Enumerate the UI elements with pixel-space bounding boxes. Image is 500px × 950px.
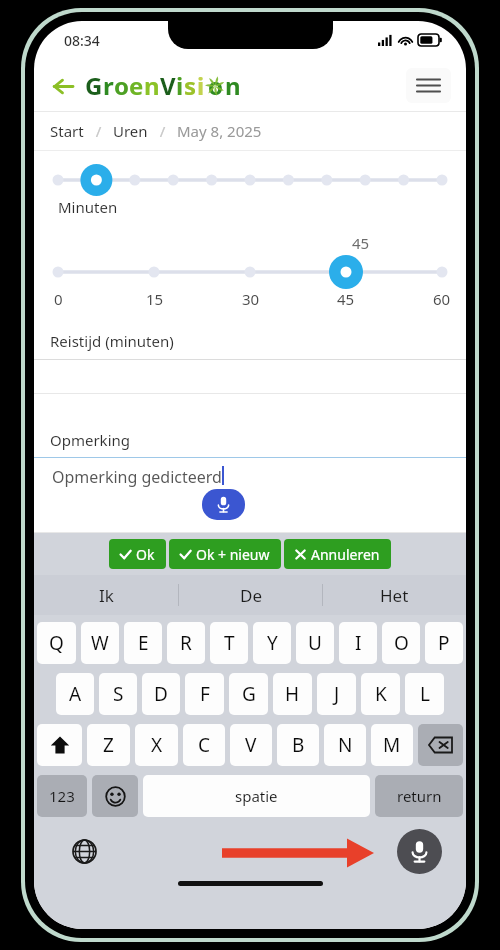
staticText: B — [292, 732, 305, 758]
staticText: o — [208, 69, 223, 102]
staticText: Opmerking gedicteerd — [52, 466, 222, 488]
staticText: / — [84, 121, 113, 141]
button[interactable]: Start — [50, 121, 84, 141]
button[interactable]: A — [56, 673, 94, 715]
button[interactable]: W — [81, 622, 119, 664]
staticText: Z — [103, 732, 114, 758]
staticText: 15 — [146, 289, 164, 305]
button[interactable]: B — [277, 724, 319, 766]
button[interactable]: I — [339, 622, 377, 664]
staticText: G — [242, 681, 256, 707]
staticText: P — [438, 630, 450, 656]
staticText: G — [85, 69, 103, 102]
staticText: s — [184, 69, 197, 102]
staticText: 08:34 — [64, 31, 100, 50]
staticText: / — [148, 121, 177, 141]
staticText: i — [197, 69, 205, 102]
button[interactable]: U — [296, 622, 334, 664]
staticText: R — [180, 630, 192, 656]
button[interactable]: Y — [253, 622, 291, 664]
staticText: V — [160, 69, 176, 102]
button[interactable]: Ik — [34, 575, 178, 615]
button[interactable]: S — [99, 673, 137, 715]
staticText: spatie — [235, 786, 278, 806]
staticText: Y — [267, 630, 278, 656]
staticText: i — [176, 69, 184, 102]
button[interactable]: Emoji — [92, 775, 138, 817]
staticText: E — [138, 630, 149, 656]
button[interactable]: Dictate note — [202, 489, 245, 520]
staticText: Q — [49, 630, 64, 656]
staticText: W — [91, 630, 109, 656]
staticText: r — [103, 69, 114, 102]
staticText: T — [224, 630, 235, 656]
button[interactable]: V — [230, 724, 272, 766]
staticText: H — [285, 681, 300, 707]
staticText: o — [114, 69, 129, 102]
button[interactable]: 123 — [37, 775, 87, 817]
button[interactable]: X — [135, 724, 178, 766]
staticText: N — [338, 732, 353, 758]
button[interactable]: Shift — [37, 724, 82, 766]
staticText: F — [200, 681, 210, 707]
staticText: X — [151, 732, 163, 758]
button[interactable]: M — [371, 724, 413, 766]
staticText: 0 — [54, 289, 63, 305]
staticText: J — [334, 681, 340, 707]
staticText: U — [308, 630, 322, 656]
staticText: C — [198, 732, 211, 758]
button[interactable]: Menu — [406, 68, 451, 103]
button[interactable]: Opmerking gedicteerd — [34, 458, 466, 532]
button[interactable]: K — [361, 673, 400, 715]
staticText: I — [355, 630, 362, 656]
button[interactable]: O — [382, 622, 420, 664]
staticText: Opmerking — [50, 430, 130, 450]
button[interactable]: Backspace — [418, 724, 463, 766]
button[interactable]: De — [179, 575, 322, 615]
staticText: e — [129, 69, 144, 102]
staticText: n — [144, 69, 160, 102]
button[interactable]: D — [142, 673, 180, 715]
button[interactable]: Het — [323, 575, 466, 615]
button[interactable]: T — [210, 622, 248, 664]
staticText: D — [154, 681, 168, 707]
staticText: K — [375, 681, 387, 707]
staticText: M — [383, 732, 401, 758]
button[interactable]: Back — [46, 70, 78, 102]
button[interactable]: Uren — [113, 121, 148, 141]
button[interactable]: Ok — [109, 539, 166, 569]
staticText: 45 — [337, 289, 355, 305]
staticText: May 8, 2025 — [177, 121, 262, 141]
staticText: 30 — [242, 289, 260, 305]
staticText: Minuten — [58, 197, 118, 217]
button[interactable]: P — [425, 622, 463, 664]
staticText: Reistijd (minuten) — [50, 331, 174, 351]
button[interactable]: G — [229, 673, 268, 715]
button[interactable]: Ok + nieuw — [169, 539, 281, 569]
button[interactable]: C — [183, 724, 225, 766]
button[interactable]: return — [375, 775, 463, 817]
button[interactable]: H — [273, 673, 312, 715]
button[interactable]: R — [167, 622, 205, 664]
button[interactable]: Q — [37, 622, 76, 664]
button[interactable]: Voice input — [397, 829, 442, 874]
staticText: 123 — [49, 786, 75, 806]
button[interactable]: spatie — [143, 775, 370, 817]
staticText: return — [397, 786, 442, 806]
button[interactable]: Z — [87, 724, 130, 766]
staticText: 60 — [433, 289, 451, 305]
staticText: n — [225, 69, 241, 102]
button[interactable]: F — [185, 673, 224, 715]
button[interactable]: J — [317, 673, 356, 715]
button[interactable]: Change keyboard language — [66, 833, 102, 869]
button[interactable]: L — [405, 673, 444, 715]
button[interactable]: N — [324, 724, 366, 766]
button[interactable]: E — [124, 622, 162, 664]
staticText: Het — [380, 584, 409, 607]
staticText: De — [240, 584, 262, 607]
staticText: Ok + nieuw — [196, 545, 270, 564]
staticText: Ik — [99, 584, 114, 607]
staticText: A — [69, 681, 82, 707]
button[interactable]: Annuleren — [284, 539, 391, 569]
